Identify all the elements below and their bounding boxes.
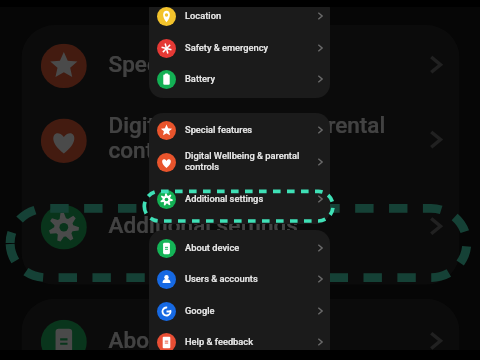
- button[interactable]: About device: [149, 232, 330, 264]
- button[interactable]: About device: [21, 303, 459, 360]
- button[interactable]: Help & feedback: [149, 326, 330, 358]
- staticText: Battery: [185, 74, 303, 85]
- staticText: Users & accounts: [185, 274, 303, 285]
- button[interactable]: Special features: [149, 114, 330, 146]
- button[interactable]: Google: [149, 295, 330, 327]
- button[interactable]: Additional settings: [21, 189, 459, 264]
- button[interactable]: Location: [149, 0, 330, 32]
- button[interactable]: Special features: [21, 27, 459, 102]
- staticText: Digital Wellbeing & parental controls: [109, 114, 394, 165]
- staticText: Additional settings: [109, 214, 394, 240]
- button[interactable]: Users & accounts: [149, 263, 330, 295]
- button[interactable]: Digital Wellbeing & parental controls: [149, 146, 330, 178]
- staticText: Google: [185, 306, 303, 317]
- button[interactable]: Safety & emergency: [149, 32, 330, 64]
- staticText: Additional settings: [185, 194, 303, 205]
- staticText: Location: [185, 11, 303, 22]
- button[interactable]: Battery: [149, 63, 330, 95]
- staticText: Digital Wellbeing & parental controls: [185, 151, 303, 173]
- staticText: Help & feedback: [185, 337, 303, 348]
- button[interactable]: Digital Wellbeing & parental controls: [21, 102, 459, 177]
- staticText: Special features: [185, 125, 303, 136]
- staticText: Safety & emergency: [185, 43, 303, 54]
- staticText: About device: [109, 329, 394, 355]
- staticText: About device: [185, 243, 303, 254]
- button[interactable]: Additional settings: [149, 183, 330, 215]
- staticText: Special features: [109, 53, 394, 79]
